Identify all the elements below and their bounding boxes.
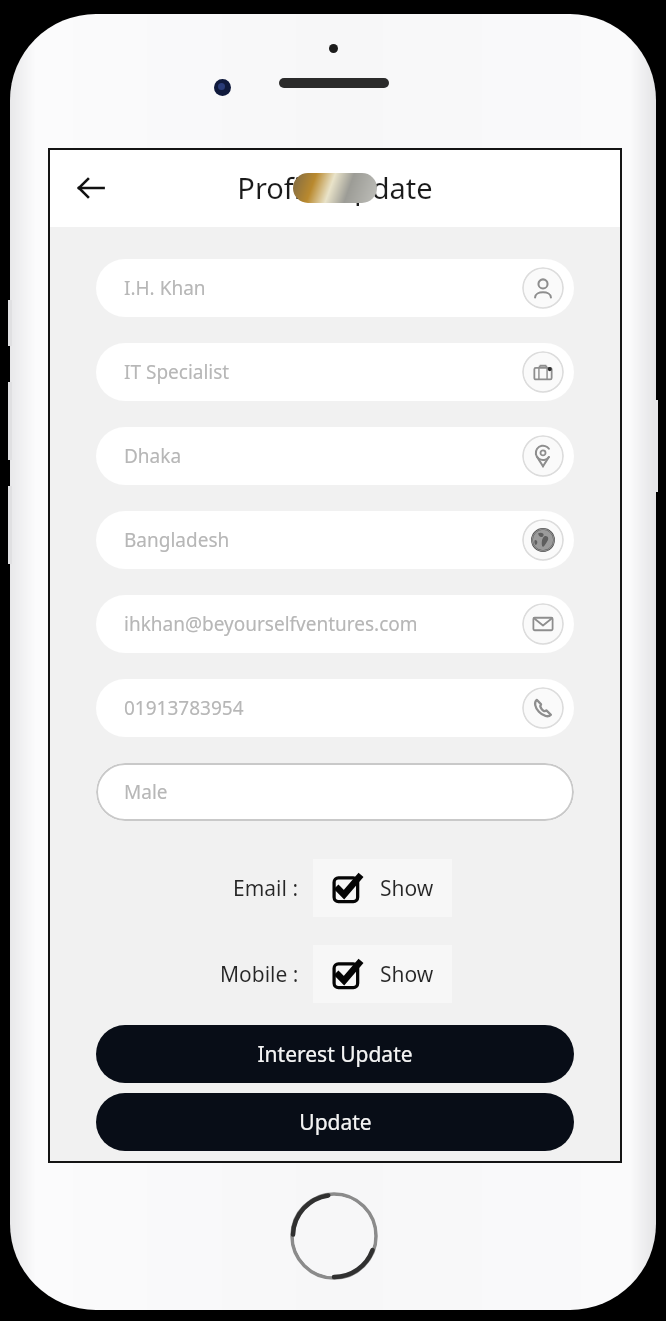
staticText: Show <box>380 960 434 989</box>
button[interactable]: Show <box>313 859 452 917</box>
button[interactable]: Update <box>96 1093 574 1151</box>
button[interactable]: Show <box>313 945 452 1003</box>
button[interactable]: Interest Update <box>96 1025 574 1083</box>
button[interactable]: Bangladesh <box>96 511 574 569</box>
staticText: Show <box>380 874 434 903</box>
button[interactable]: IT Specialist <box>96 343 574 401</box>
staticText: Dhaka <box>124 443 182 469</box>
staticText: 01913783954 <box>124 695 244 721</box>
staticText: Email : <box>233 874 299 903</box>
button[interactable]: 01913783954 <box>96 679 574 737</box>
staticText: Mobile : <box>220 960 299 989</box>
staticText: IT Specialist <box>124 359 230 385</box>
button[interactable]: ihkhan@beyourselfventures.com <box>96 595 574 653</box>
staticText: ihkhan@beyourselfventures.com <box>124 611 418 637</box>
staticText: I.H. Khan <box>124 275 206 301</box>
button[interactable]: Male <box>96 763 574 821</box>
button[interactable]: Back <box>64 161 118 215</box>
staticText: Male <box>124 779 168 805</box>
staticText: Update <box>299 1108 372 1137</box>
staticText: Interest Update <box>257 1040 413 1069</box>
button[interactable]: I.H. Khan <box>96 259 574 317</box>
staticText: Profile Update <box>237 168 433 207</box>
staticText: Bangladesh <box>124 527 230 553</box>
button[interactable]: Dhaka <box>96 427 574 485</box>
